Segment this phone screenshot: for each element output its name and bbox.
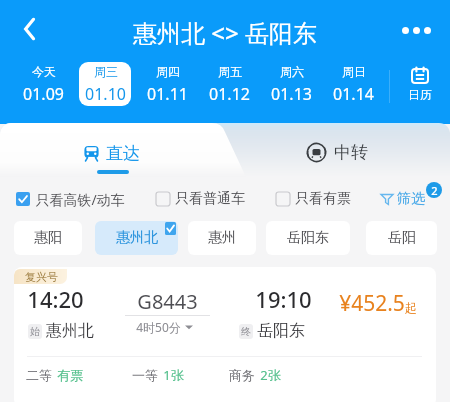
staticText: 惠州北 <> 岳阳东 (0, 16, 450, 49)
staticText: 直达 (106, 143, 140, 164)
staticText: G8443 (137, 288, 198, 315)
staticText: 起 (405, 300, 417, 315)
staticText: 01.11 (147, 83, 188, 105)
button[interactable]: More options (396, 10, 436, 50)
button[interactable]: 中转 (297, 138, 379, 166)
staticText: 惠州 (208, 229, 236, 247)
button[interactable]: Calendar (395, 62, 445, 106)
button[interactable]: 复兴号 (14, 267, 436, 402)
staticText: 2张 (260, 366, 281, 384)
button[interactable]: 今天 (17, 62, 69, 106)
staticText: 周四 (156, 64, 180, 79)
staticText: 周五 (218, 64, 242, 79)
staticText: 日历 (408, 87, 432, 102)
button[interactable]: 岳阳东 (266, 221, 350, 255)
staticText: 周日 (342, 64, 366, 79)
staticText: 岳阳东 (257, 321, 305, 341)
button[interactable]: 周三 (79, 62, 131, 106)
staticText: 14:20 (27, 284, 84, 314)
staticText: 筛选 (397, 190, 425, 208)
staticText: 只看高铁/动车 (35, 190, 125, 209)
staticText: 中转 (334, 142, 368, 163)
staticText: 惠州北 (46, 321, 94, 341)
staticText: 今天 (32, 64, 56, 79)
button[interactable]: 周六 (265, 62, 317, 106)
button[interactable]: 惠阳 (14, 221, 82, 255)
button[interactable]: 只看有票 (276, 189, 351, 209)
staticText: 二等 (26, 367, 52, 383)
staticText: 周三 (94, 64, 118, 79)
staticText: 4时50分 (136, 319, 181, 335)
staticText: 01.13 (271, 83, 312, 105)
staticText: 1张 (163, 366, 184, 384)
staticText: 惠阳 (34, 229, 62, 247)
staticText: 一等 (132, 367, 158, 383)
staticText: 01.14 (333, 83, 374, 105)
staticText: 周六 (280, 64, 304, 79)
staticText: 岳阳 (388, 229, 416, 247)
staticText: 岳阳东 (287, 229, 329, 247)
staticText: 19:10 (255, 284, 312, 314)
staticText: 商务 (229, 367, 255, 383)
button[interactable]: 只看普通车 (156, 189, 245, 209)
button[interactable]: 直达 (74, 139, 152, 167)
staticText: 有票 (57, 367, 83, 383)
button[interactable]: 岳阳 (366, 221, 437, 255)
button[interactable]: 只看高铁/动车 (16, 189, 125, 209)
staticText: 复兴号 (25, 270, 58, 284)
button[interactable]: 周五 (203, 62, 255, 106)
button[interactable]: Back (10, 9, 50, 49)
staticText: 2 (431, 183, 438, 198)
button[interactable]: 周日 (327, 62, 379, 106)
staticText: 始 (30, 325, 40, 338)
staticText: 惠州北 (116, 229, 158, 247)
button[interactable]: 惠州 (188, 221, 256, 255)
staticText: 只看有票 (295, 190, 351, 208)
staticText: 01.09 (23, 83, 64, 105)
staticText: 01.10 (85, 83, 126, 105)
staticText: 终 (241, 325, 251, 338)
staticText: 只看普通车 (175, 190, 245, 208)
button[interactable]: 惠州北 (95, 221, 178, 255)
button[interactable]: 筛选 (380, 186, 450, 212)
staticText: 01.12 (209, 83, 250, 105)
staticText: ¥452.5 (339, 289, 405, 318)
button[interactable]: 周四 (141, 62, 193, 106)
